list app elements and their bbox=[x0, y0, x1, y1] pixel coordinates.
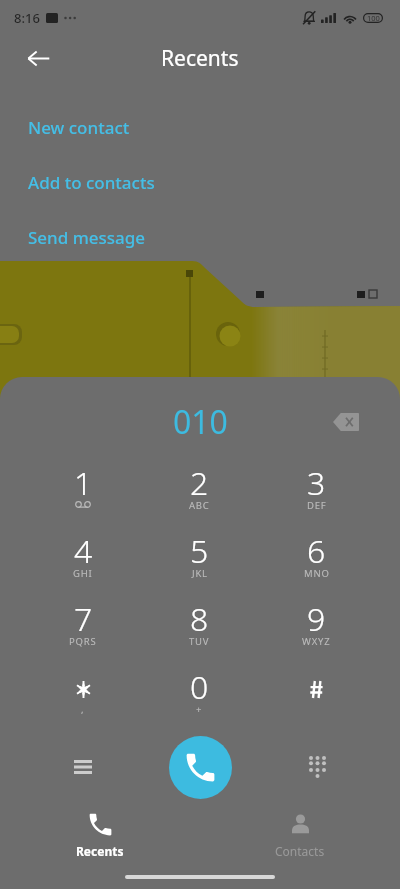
staticText: WXYZ bbox=[302, 635, 331, 648]
staticText: + bbox=[196, 703, 203, 716]
button[interactable]: 9 bbox=[258, 590, 375, 658]
button[interactable]: , bbox=[25, 658, 141, 726]
staticText: , bbox=[81, 703, 85, 716]
button[interactable]: 4 bbox=[25, 522, 141, 590]
button[interactable]: 8 bbox=[141, 590, 258, 658]
button[interactable]: 2 bbox=[141, 454, 258, 522]
button[interactable]: Add to contacts bbox=[0, 155, 400, 210]
staticText: JKL bbox=[192, 567, 208, 580]
button[interactable]: 7 bbox=[25, 590, 141, 658]
button[interactable]: Keypad menu bbox=[59, 743, 107, 791]
button[interactable]: 1 bbox=[25, 454, 141, 522]
button[interactable]: Dialpad bbox=[293, 743, 341, 791]
staticText: PQRS bbox=[69, 635, 97, 648]
button[interactable]: New contact bbox=[0, 100, 400, 155]
staticText: Send message bbox=[28, 226, 146, 249]
staticText: TUV bbox=[189, 635, 210, 648]
staticText: Add to contacts bbox=[28, 171, 155, 194]
staticText: Recents bbox=[161, 44, 239, 73]
staticText: ABC bbox=[189, 499, 210, 512]
button[interactable]: 3 bbox=[258, 454, 375, 522]
staticText: 8 bbox=[190, 597, 209, 641]
staticText: 1 bbox=[74, 461, 93, 505]
staticText: 010 bbox=[173, 400, 228, 444]
button[interactable]: 0 bbox=[141, 658, 258, 726]
staticText: 8:16 bbox=[14, 9, 40, 27]
staticText: 6 bbox=[307, 529, 326, 573]
staticText: 7 bbox=[74, 597, 93, 641]
staticText: 5 bbox=[190, 529, 209, 573]
button[interactable]: Backspace bbox=[324, 400, 368, 444]
staticText: MNO bbox=[304, 567, 330, 580]
button[interactable]: Call bbox=[169, 736, 232, 799]
button[interactable]: Back bbox=[16, 36, 60, 80]
button[interactable] bbox=[258, 658, 375, 726]
button[interactable]: Recents bbox=[0, 813, 200, 889]
button[interactable]: 6 bbox=[258, 522, 375, 590]
staticText: DEF bbox=[307, 499, 327, 512]
button[interactable]: Send message bbox=[0, 210, 400, 265]
button[interactable]: Contacts bbox=[200, 813, 400, 889]
staticText: 3 bbox=[307, 461, 326, 505]
staticText: 2 bbox=[190, 461, 209, 505]
staticText: Recents bbox=[76, 843, 124, 859]
button[interactable]: 5 bbox=[141, 522, 258, 590]
staticText: Contacts bbox=[275, 843, 325, 859]
staticText: 100 bbox=[367, 13, 380, 23]
staticText: New contact bbox=[28, 116, 130, 139]
staticText: 4 bbox=[74, 529, 93, 573]
staticText: 0 bbox=[190, 665, 209, 709]
staticText: 9 bbox=[307, 597, 326, 641]
staticText: GHI bbox=[73, 567, 93, 580]
